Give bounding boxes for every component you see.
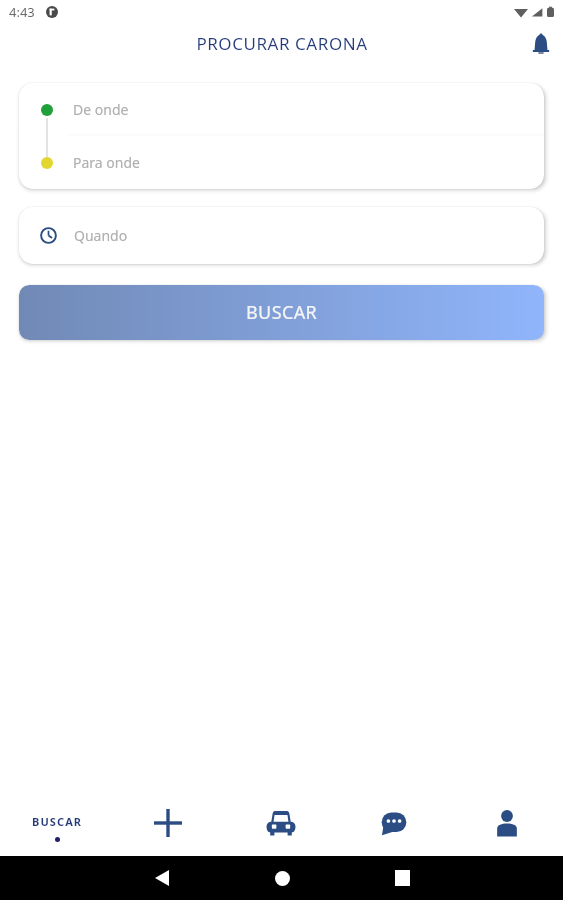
button[interactable]: De onde bbox=[19, 83, 544, 136]
button[interactable]: BUSCAR bbox=[19, 285, 544, 340]
staticText: PROCURAR CARONA bbox=[196, 32, 368, 55]
staticText: 4:43 bbox=[9, 3, 35, 21]
button[interactable]: Back bbox=[102, 856, 222, 900]
staticText: BUSCAR bbox=[246, 300, 318, 325]
staticText: Quando bbox=[74, 226, 128, 245]
button[interactable]: Home bbox=[222, 856, 342, 900]
button[interactable]: My rides bbox=[224, 790, 337, 856]
staticText: Para onde bbox=[73, 153, 140, 172]
staticText: BUSCAR bbox=[32, 814, 83, 829]
button[interactable]: Para onde bbox=[19, 136, 544, 189]
staticText: De onde bbox=[73, 100, 129, 119]
button[interactable]: Recent apps bbox=[342, 856, 462, 900]
button[interactable]: BUSCAR bbox=[0, 790, 112, 856]
button[interactable]: Messages bbox=[337, 790, 450, 856]
button[interactable]: Profile bbox=[450, 790, 563, 856]
button[interactable]: Quando bbox=[19, 207, 544, 264]
button[interactable]: Notifications bbox=[524, 27, 558, 61]
button[interactable]: Offer ride bbox=[112, 790, 224, 856]
